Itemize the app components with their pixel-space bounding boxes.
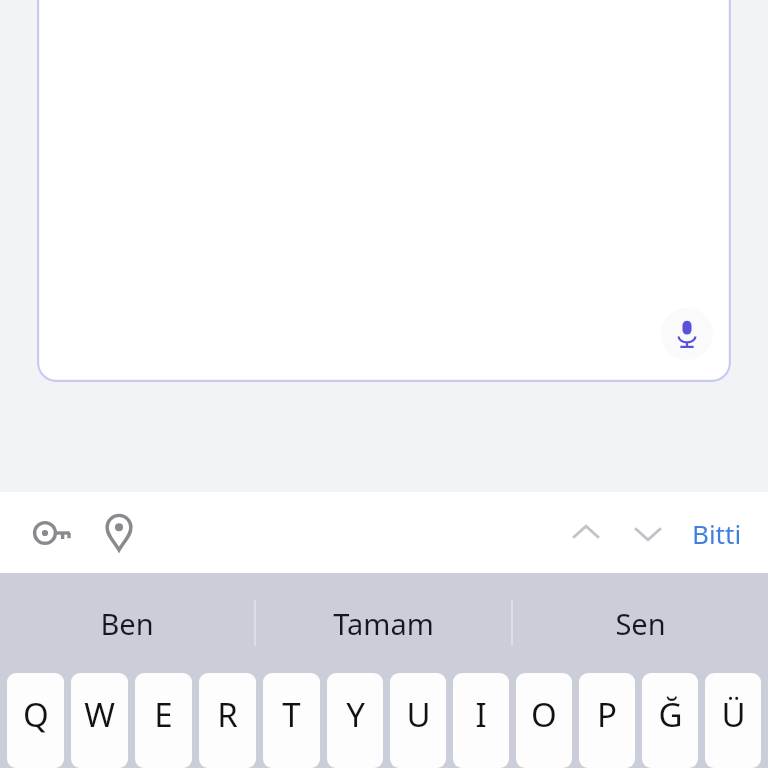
button[interactable]: Sen	[513, 573, 768, 673]
button[interactable]: Konum	[92, 506, 146, 560]
button[interactable]: T	[263, 673, 320, 768]
button[interactable]: Sesle yaz	[661, 308, 713, 360]
button[interactable]: E	[135, 673, 192, 768]
button[interactable]: Sonraki	[622, 507, 674, 559]
staticText: Tamam	[333, 604, 434, 643]
staticText: Ğ	[658, 692, 683, 737]
button[interactable]: R	[199, 673, 256, 768]
staticText: O	[531, 692, 557, 737]
button[interactable]: Sesle yaz	[37, 0, 731, 382]
staticText: Ü	[721, 692, 746, 737]
button[interactable]: Y	[327, 673, 383, 768]
staticText: U	[406, 692, 431, 737]
button[interactable]: Önceki	[560, 507, 612, 559]
staticText: T	[282, 692, 301, 737]
staticText: E	[154, 692, 173, 737]
button[interactable]: Q	[7, 673, 64, 768]
button[interactable]: U	[390, 673, 446, 768]
staticText: P	[597, 692, 617, 737]
staticText: W	[84, 692, 115, 737]
button[interactable]: Ğ	[642, 673, 698, 768]
staticText: R	[217, 692, 238, 737]
button[interactable]: I	[453, 673, 509, 768]
staticText: Bitti	[692, 516, 742, 551]
button[interactable]: Tamam	[256, 573, 511, 673]
button[interactable]: W	[71, 673, 128, 768]
button[interactable]: Ü	[705, 673, 761, 768]
button[interactable]: O	[516, 673, 572, 768]
button[interactable]: Ben	[0, 573, 254, 673]
button[interactable]: Şifreler	[26, 506, 80, 560]
button[interactable]: Bitti	[692, 516, 742, 551]
staticText: Y	[346, 692, 365, 737]
button[interactable]: P	[579, 673, 635, 768]
staticText: Q	[23, 692, 49, 737]
staticText: I	[475, 692, 487, 737]
staticText: Sen	[615, 604, 666, 643]
staticText: Ben	[100, 604, 154, 643]
